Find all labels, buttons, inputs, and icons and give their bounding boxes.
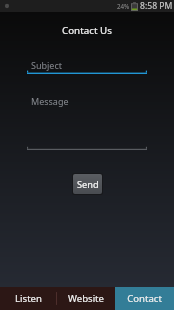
button[interactable]: Website (56, 287, 115, 310)
staticText: 8:58 PM (140, 0, 173, 12)
staticText: Contact (127, 292, 162, 305)
staticText: Send (77, 178, 99, 191)
button[interactable]: Listen (0, 287, 56, 310)
button[interactable]: Message (27, 95, 147, 150)
button[interactable]: Send (73, 174, 102, 194)
staticText: 24% (117, 2, 130, 10)
button[interactable]: Contact (115, 287, 174, 310)
staticText: Contact Us (62, 24, 112, 37)
button[interactable]: Subject (27, 59, 147, 74)
staticText: Subject (31, 59, 63, 71)
staticText: Website (68, 292, 104, 305)
staticText: Listen (15, 292, 42, 305)
staticText: Message (31, 95, 69, 107)
